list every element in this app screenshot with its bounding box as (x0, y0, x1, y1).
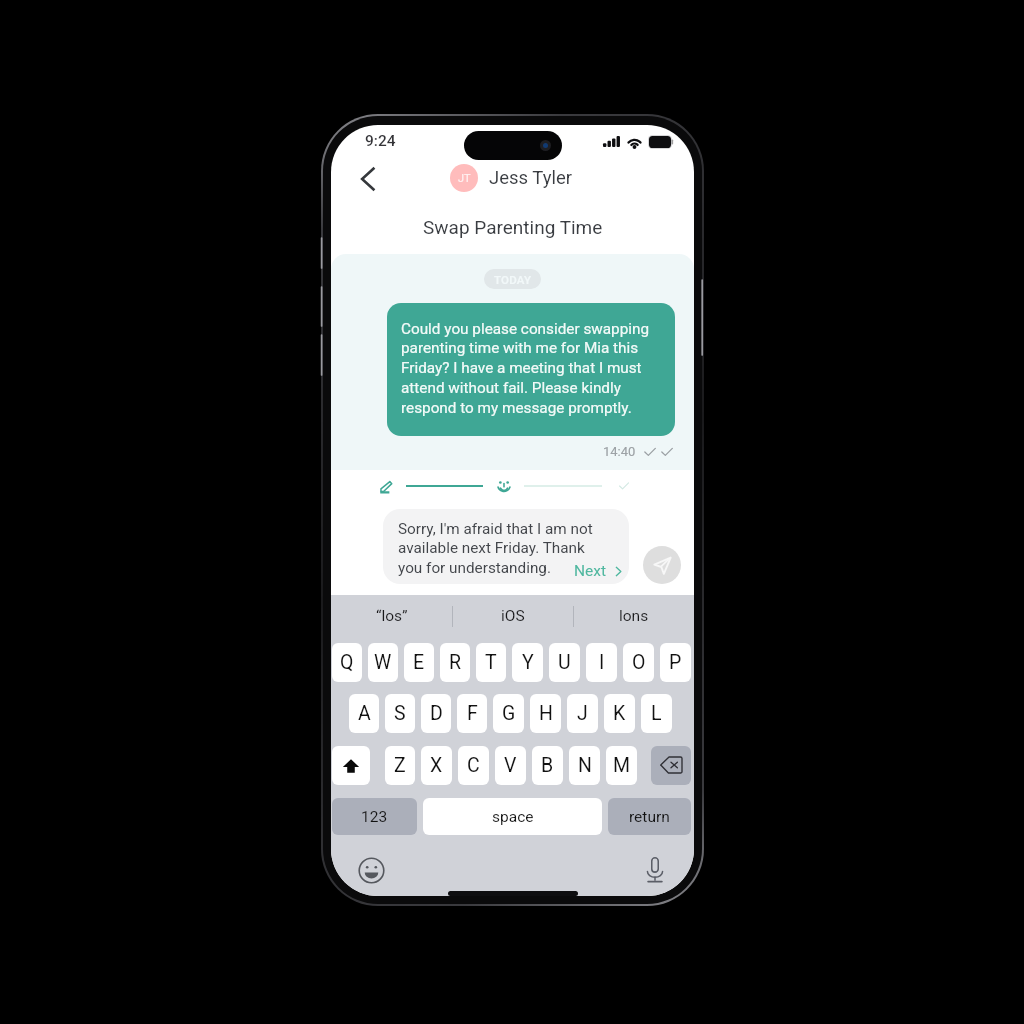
staticText: G (502, 702, 516, 725)
button[interactable]: W (368, 643, 398, 682)
button[interactable]: Y (512, 643, 543, 682)
button[interactable]: Send (643, 546, 681, 584)
staticText: T (485, 651, 497, 674)
button[interactable]: B (532, 746, 563, 785)
staticText: JT (458, 172, 471, 185)
button[interactable]: C (458, 746, 489, 785)
button[interactable]: L (641, 694, 672, 733)
staticText: Q (340, 651, 354, 674)
staticText: E (413, 651, 425, 674)
staticText: U (558, 651, 571, 674)
staticText: Swap Parenting Time (423, 216, 603, 238)
staticText: D (430, 702, 443, 725)
button[interactable]: H (530, 694, 561, 733)
button[interactable]: lons (574, 595, 694, 637)
staticText: return (629, 808, 670, 826)
staticText: I (599, 651, 605, 674)
button[interactable]: F (457, 694, 487, 733)
staticText: K (613, 702, 626, 725)
button[interactable]: O (623, 643, 654, 682)
button[interactable]: Next (568, 558, 629, 584)
button[interactable]: E (404, 643, 434, 682)
button[interactable]: P (660, 643, 691, 682)
staticText: F (467, 702, 478, 725)
button[interactable]: 123 (332, 798, 417, 835)
staticText: “los” (376, 607, 408, 625)
button[interactable]: X (421, 746, 452, 785)
button[interactable]: D (421, 694, 451, 733)
staticText: B (541, 754, 554, 777)
staticText: iOS (501, 607, 525, 625)
button[interactable]: Dictation (640, 855, 670, 885)
button[interactable]: Tone step (497, 479, 511, 493)
staticText: S (394, 702, 406, 725)
button[interactable]: Shift (332, 746, 370, 785)
button[interactable]: T (476, 643, 506, 682)
staticText: H (539, 702, 553, 725)
staticText: 9:24 (365, 132, 396, 150)
button[interactable]: A (349, 694, 379, 733)
staticText: J (577, 702, 588, 725)
staticText: P (669, 651, 682, 674)
button[interactable]: G (493, 694, 524, 733)
staticText: L (651, 702, 662, 725)
button[interactable]: Emoji keyboard (356, 855, 386, 885)
button[interactable]: J (567, 694, 598, 733)
staticText: R (449, 651, 462, 674)
staticText: Z (394, 754, 406, 777)
button[interactable]: N (569, 746, 600, 785)
staticText: 14:40 (603, 444, 636, 459)
staticText: space (492, 808, 534, 826)
button[interactable]: “los” (331, 595, 452, 637)
button[interactable]: space (423, 798, 602, 835)
button[interactable]: K (604, 694, 635, 733)
button[interactable]: Q (332, 643, 362, 682)
button[interactable]: I (586, 643, 617, 682)
button[interactable]: Z (385, 746, 415, 785)
staticText: A (358, 702, 371, 725)
button[interactable]: Compose step (380, 480, 392, 493)
button[interactable]: R (440, 643, 470, 682)
staticText: Next (574, 562, 607, 580)
staticText: Could you please consider swapping paren… (401, 320, 662, 417)
staticText: X (430, 754, 443, 777)
staticText: N (578, 754, 592, 777)
staticText: V (504, 754, 517, 777)
staticText: Y (522, 651, 534, 674)
staticText: C (467, 754, 480, 777)
button[interactable]: S (385, 694, 415, 733)
button[interactable]: Back (349, 160, 387, 198)
staticText: TODAY (494, 273, 532, 286)
button[interactable]: U (549, 643, 580, 682)
button[interactable]: iOS (453, 595, 573, 637)
button[interactable]: return (608, 798, 691, 835)
staticText: W (374, 651, 392, 674)
button[interactable]: JT (450, 164, 573, 192)
staticText: lons (619, 607, 649, 625)
staticText: Sorry, I'm afraid that I am not availabl… (398, 520, 594, 577)
button[interactable]: M (606, 746, 637, 785)
staticText: O (632, 651, 646, 674)
button[interactable]: V (495, 746, 526, 785)
staticText: Jess Tyler (489, 167, 573, 189)
staticText: M (613, 754, 631, 777)
button[interactable]: Sorry, I'm afraid that I am not availabl… (383, 509, 629, 584)
staticText: 123 (361, 808, 388, 826)
button[interactable]: Backspace (651, 746, 691, 785)
